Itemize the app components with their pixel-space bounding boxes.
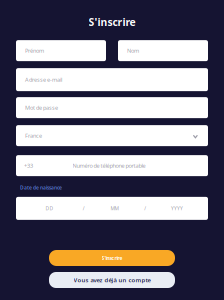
staticText: Prénom (25, 47, 44, 54)
staticText: Adresse e-mail (25, 76, 62, 83)
staticText: S'inscrire (101, 255, 122, 261)
button[interactable]: Adresse e-mail (16, 68, 208, 91)
button[interactable]: S'inscrire (49, 250, 175, 266)
button[interactable]: Prénom (16, 40, 106, 61)
staticText: Nom (127, 47, 139, 54)
button[interactable]: DD (16, 197, 208, 220)
staticText: YYYY (171, 205, 183, 212)
staticText: Mot de passe (25, 104, 58, 111)
staticText: / (144, 205, 146, 212)
staticText: Date de naissance (20, 184, 62, 191)
button[interactable]: Nom (118, 40, 208, 61)
staticText: / (83, 205, 85, 212)
staticText: S'inscrire (88, 15, 135, 29)
staticText: Vous avez déjà un compte (73, 276, 150, 284)
staticText: +33 (24, 162, 33, 169)
button[interactable]: +33 (16, 155, 208, 176)
staticText: DD (45, 205, 53, 212)
staticText: Numéro de téléphone portable (72, 162, 145, 169)
button[interactable]: France (16, 125, 208, 146)
staticText: MM (110, 205, 118, 212)
button[interactable]: Vous avez déjà un compte (49, 272, 175, 288)
staticText: France (25, 132, 42, 139)
button[interactable]: Mot de passe (16, 97, 208, 118)
